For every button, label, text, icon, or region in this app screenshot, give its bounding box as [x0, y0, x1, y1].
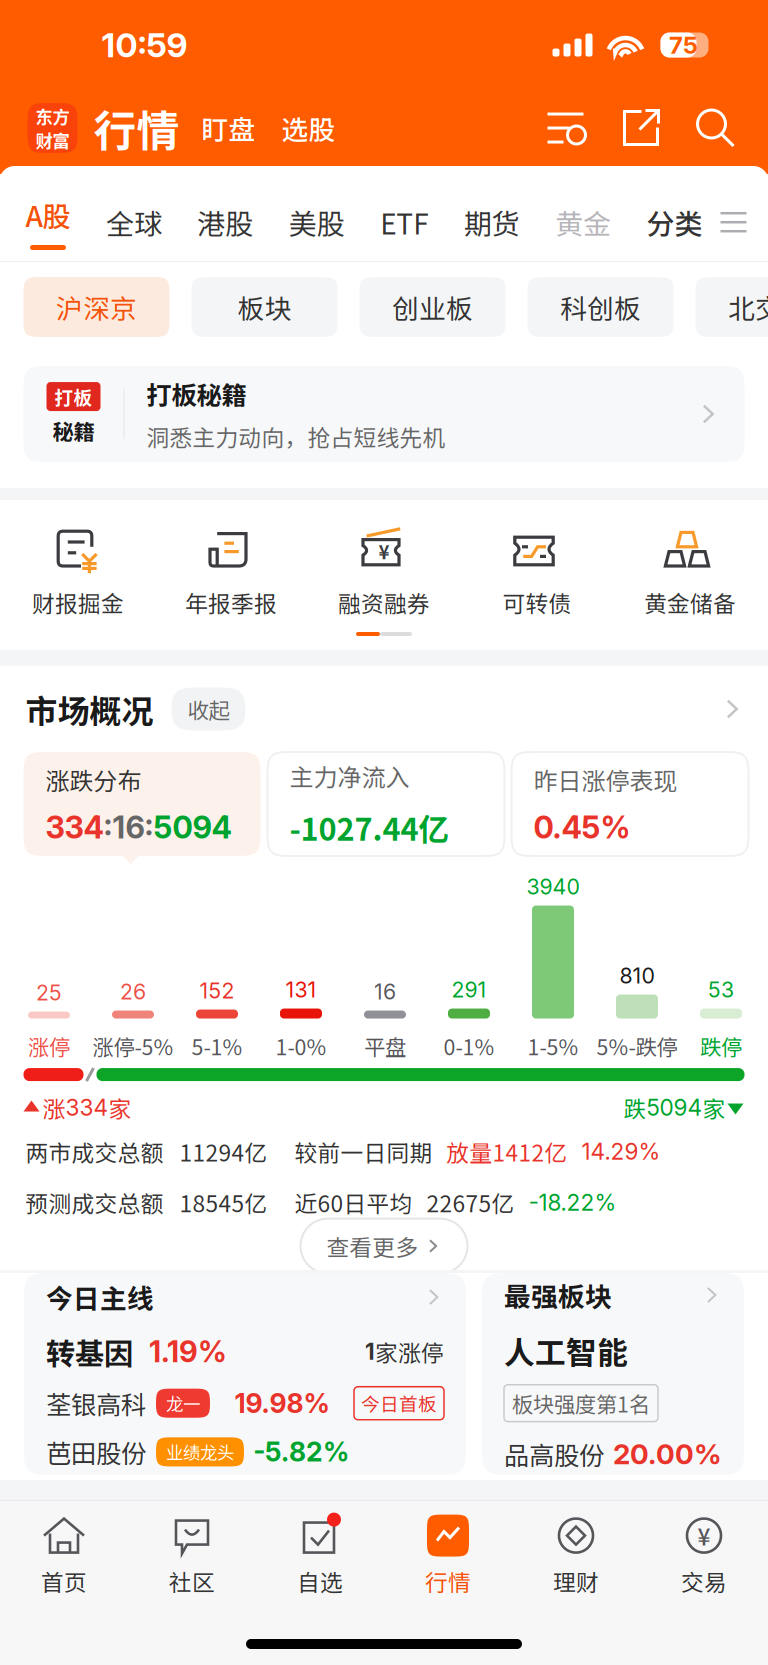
staticText: :16:	[103, 809, 153, 846]
staticText: 交易	[681, 1565, 727, 1597]
button[interactable]: 美股	[289, 202, 345, 242]
staticText: 25	[36, 980, 62, 1005]
staticText: 跌停	[700, 1031, 742, 1061]
button[interactable]: 年报季报	[154, 500, 307, 650]
staticText: 334	[65, 1094, 108, 1121]
staticText: 26	[120, 979, 146, 1004]
button[interactable]: 查看更多	[300, 1211, 467, 1273]
staticText: 291	[451, 977, 486, 1002]
staticText: 涨跌分布	[45, 762, 141, 797]
button[interactable]: 沪深京	[23, 277, 169, 337]
button[interactable]: 港股	[197, 202, 253, 242]
button[interactable]: 打板	[0, 352, 768, 488]
button[interactable]: 社区	[128, 1501, 256, 1609]
staticText: 分类	[646, 202, 702, 242]
staticText: 1-5%	[527, 1031, 578, 1061]
button[interactable]: 北交所	[695, 277, 768, 337]
staticText: 芭田股份	[46, 1433, 146, 1470]
staticText: -18.22%	[528, 1189, 616, 1216]
staticText: ¥	[378, 537, 389, 564]
staticText: 近60日平均	[294, 1186, 412, 1219]
button[interactable]: 更多分类	[702, 209, 746, 235]
button[interactable]: 理财	[512, 1501, 640, 1609]
button[interactable]: 科创板	[527, 277, 673, 337]
staticText: 20.00%	[613, 1437, 722, 1471]
staticText: 行情	[93, 97, 179, 159]
button[interactable]: 选股	[255, 109, 335, 147]
staticText: 北交所	[728, 288, 768, 326]
staticText: 行情	[425, 1565, 471, 1597]
button[interactable]: 东方财富	[27, 103, 77, 153]
staticText: A股	[25, 194, 70, 235]
staticText: 0-1%	[443, 1031, 494, 1061]
staticText: 家	[702, 1091, 725, 1124]
button[interactable]: 财报掘金	[1, 500, 154, 650]
staticText: 5094	[646, 1094, 702, 1121]
staticText: 港股	[197, 202, 253, 242]
staticText: 创业板	[392, 288, 473, 326]
button[interactable]: 板块	[191, 277, 337, 337]
button[interactable]: 首页	[0, 1501, 128, 1609]
staticText: 18545亿	[179, 1186, 267, 1219]
staticText: 主力净流入	[289, 758, 409, 793]
staticText: 今日主线	[46, 1278, 154, 1316]
staticText: 810	[619, 963, 654, 988]
staticText: 5%-跌停	[596, 1031, 677, 1061]
staticText: 市场概况	[25, 686, 153, 732]
staticText: 业绩龙头	[166, 1439, 234, 1464]
button[interactable]: 收起	[171, 688, 245, 730]
staticText: 洞悉主力动向，抢占短线先机	[146, 420, 445, 453]
staticText: 荃银高科	[46, 1385, 146, 1422]
staticText: 收起	[187, 694, 229, 724]
button[interactable]: ETF	[380, 202, 428, 242]
staticText: 社区	[169, 1565, 215, 1597]
staticText: 美股	[289, 202, 345, 242]
staticText: 5-1%	[191, 1031, 242, 1061]
button[interactable]: ¥	[307, 500, 460, 650]
staticText: 75	[669, 30, 698, 59]
staticText: 品高股份	[504, 1436, 604, 1472]
staticText: 沪深京	[56, 288, 137, 326]
button[interactable]: A股	[25, 194, 70, 250]
staticText: 人工智能	[504, 1328, 628, 1373]
staticText: 黄金	[555, 202, 611, 242]
staticText: -5.82%	[253, 1436, 349, 1468]
staticText: 盯盘	[201, 109, 255, 147]
button[interactable]: 盯盘	[179, 109, 255, 147]
staticText: 两市成交总额	[25, 1135, 163, 1168]
staticText: 涨	[42, 1091, 65, 1124]
button[interactable]: 黄金储备	[613, 500, 766, 650]
staticText: 14.29%	[581, 1138, 660, 1165]
staticText: 预测成交总额	[25, 1186, 163, 1219]
staticText: 16	[374, 979, 396, 1004]
button[interactable]: 筛选	[546, 108, 588, 148]
button[interactable]: 全球	[106, 202, 162, 242]
button[interactable]: ¥	[640, 1501, 768, 1609]
staticText: 东方	[35, 103, 69, 128]
button[interactable]: 更多市场概况	[718, 696, 744, 722]
staticText: 黄金储备	[644, 586, 736, 619]
button[interactable]: 自选	[256, 1501, 384, 1609]
staticText: 最强板块	[504, 1276, 612, 1314]
button[interactable]: 黄金	[555, 202, 611, 242]
button[interactable]: 最强板块	[482, 1273, 744, 1475]
button[interactable]: 今日主线	[24, 1273, 466, 1475]
staticText: 昨日涨停表现	[533, 762, 677, 797]
staticText: 查看更多	[326, 1230, 418, 1262]
button[interactable]: 搜索	[662, 107, 736, 149]
button[interactable]: 可转债	[460, 500, 613, 650]
button[interactable]: 分享	[588, 107, 662, 148]
button[interactable]: 分类	[646, 202, 702, 242]
button[interactable]: 行情	[384, 1501, 512, 1609]
staticText: 3940	[526, 874, 579, 899]
staticText: 10:59	[101, 25, 187, 65]
staticText: 打板	[54, 383, 92, 410]
button[interactable]: 期货	[464, 202, 520, 242]
staticText: 跌	[623, 1091, 646, 1124]
button[interactable]: 创业板	[359, 277, 505, 337]
staticText: 1-0%	[275, 1031, 326, 1061]
staticText: 家	[108, 1091, 131, 1124]
staticText: 19.98%	[234, 1387, 329, 1419]
staticText: 融资融券	[338, 586, 430, 619]
staticText: 1.19%	[149, 1334, 227, 1369]
